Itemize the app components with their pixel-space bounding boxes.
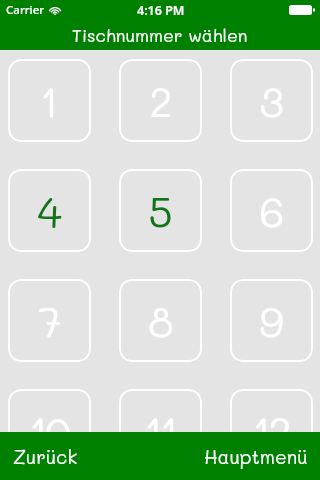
button[interactable]: 9 <box>230 279 313 362</box>
staticText: Tischnummer wählen <box>72 24 248 47</box>
staticText: Carrier <box>6 2 45 18</box>
staticText: Hauptmenü <box>204 444 308 469</box>
staticText: 4:16 PM <box>137 2 185 19</box>
button[interactable]: 7 <box>8 279 91 362</box>
staticText: 9 <box>259 294 284 349</box>
staticText: 5 <box>148 184 173 239</box>
staticText: 2 <box>149 74 173 129</box>
staticText: 6 <box>259 184 285 239</box>
button[interactable]: 3 <box>230 59 313 142</box>
staticText: 4 <box>37 184 62 239</box>
staticText: 11 <box>144 404 176 459</box>
button[interactable]: 6 <box>230 169 313 252</box>
button[interactable]: 8 <box>119 279 202 362</box>
button[interactable]: 5 <box>119 169 202 252</box>
staticText: 8 <box>148 294 174 349</box>
button[interactable]: 12 <box>230 389 313 472</box>
button[interactable]: 1 <box>8 59 91 142</box>
staticText: Zurück <box>13 444 78 469</box>
button[interactable]: 4 <box>8 169 91 252</box>
button[interactable]: Hauptmenü <box>191 436 320 477</box>
staticText: 3 <box>259 74 284 129</box>
staticText: 12 <box>252 404 289 459</box>
button[interactable]: 2 <box>119 59 202 142</box>
staticText: 1 <box>40 74 59 129</box>
button[interactable]: 10 <box>8 389 91 472</box>
staticText: 7 <box>38 294 62 349</box>
button[interactable]: Zurück <box>0 436 91 477</box>
staticText: 10 <box>29 404 68 459</box>
button[interactable]: 11 <box>119 389 202 472</box>
